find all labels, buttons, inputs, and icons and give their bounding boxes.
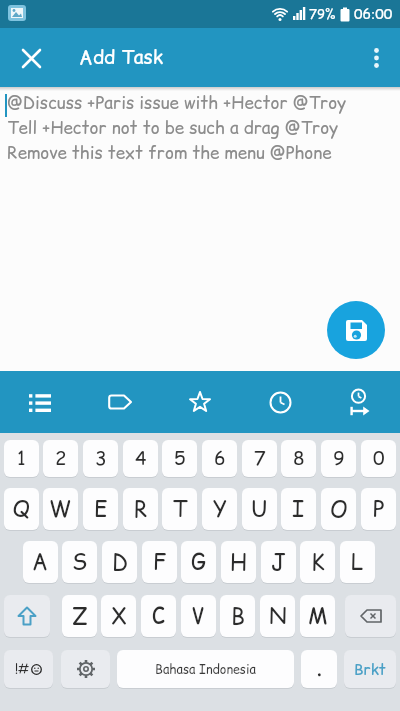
staticText: K [311, 547, 325, 578]
button[interactable]: Q [4, 488, 39, 530]
staticText: B [231, 601, 245, 632]
staticText: W [49, 494, 72, 525]
button[interactable]: J [261, 541, 296, 583]
staticText: U [251, 494, 268, 525]
button[interactable]: G [181, 541, 216, 583]
button[interactable] [14, 41, 48, 75]
staticText: Brkt [354, 659, 386, 680]
staticText: 5 [174, 445, 186, 472]
button[interactable] [4, 595, 50, 637]
staticText: 8 [293, 445, 305, 472]
button[interactable]: 7 [242, 440, 277, 477]
button[interactable]: 6 [202, 440, 237, 477]
button[interactable]: C [141, 595, 176, 637]
button[interactable]: B [220, 595, 255, 637]
button[interactable]: H [221, 541, 256, 583]
button[interactable] [80, 371, 160, 433]
staticText: 4 [135, 445, 147, 472]
button[interactable] [240, 371, 320, 433]
button[interactable]: U [242, 488, 277, 530]
button[interactable]: 5 [162, 440, 197, 477]
button[interactable]: !# [4, 650, 53, 688]
staticText: Bahasa Indonesia [155, 661, 256, 678]
staticText: S [72, 547, 88, 578]
button[interactable]: S [62, 541, 97, 583]
staticText: Add Task [79, 44, 164, 71]
staticText: G [191, 547, 206, 578]
button[interactable]: Z [62, 595, 97, 637]
staticText: P [373, 494, 385, 525]
button[interactable]: Bahasa Indonesia [117, 650, 294, 688]
staticText: 9 [333, 445, 345, 472]
staticText: 06:00 [354, 4, 393, 24]
staticText: E [94, 494, 108, 525]
button[interactable] [327, 301, 385, 359]
staticText: 0 [373, 445, 385, 472]
button[interactable]: E [83, 488, 118, 530]
staticText: R [134, 494, 148, 525]
button[interactable] [0, 371, 80, 433]
staticText: V [191, 601, 206, 632]
button[interactable]: X [101, 595, 136, 637]
button[interactable]: 4 [123, 440, 158, 477]
button[interactable]: 3 [83, 440, 118, 477]
staticText: J [271, 547, 286, 578]
staticText: I [292, 494, 305, 525]
button[interactable] [160, 371, 240, 433]
button[interactable]: K [300, 541, 335, 583]
button[interactable] [345, 595, 396, 637]
staticText: 6 [214, 445, 226, 472]
button[interactable]: R [123, 488, 158, 530]
button[interactable]: . [301, 650, 337, 688]
button[interactable]: O [321, 488, 356, 530]
staticText: D [112, 547, 128, 578]
staticText: H [230, 547, 247, 578]
staticText: 3 [95, 445, 107, 472]
button[interactable]: T [162, 488, 197, 530]
button[interactable]: A [23, 541, 58, 583]
staticText: O [330, 494, 348, 525]
staticText: 7 [254, 445, 266, 472]
staticText: Z [72, 601, 88, 632]
staticText: L [351, 547, 364, 578]
staticText: F [153, 547, 167, 578]
button[interactable]: Brkt [344, 650, 396, 688]
button[interactable]: L [340, 541, 375, 583]
staticText: Y [213, 494, 227, 525]
button[interactable] [320, 371, 400, 433]
staticText: Q [12, 494, 32, 525]
button[interactable]: F [142, 541, 177, 583]
staticText: C [152, 601, 166, 632]
staticText: @Discuss +Paris issue with +Hector @Troy… [7, 91, 347, 165]
button[interactable]: 0 [361, 440, 396, 477]
button[interactable] [61, 650, 110, 688]
button[interactable]: W [43, 488, 78, 530]
button[interactable]: P [361, 488, 396, 530]
staticText: 2 [55, 445, 67, 472]
staticText: !# [15, 660, 30, 678]
staticText: T [172, 494, 187, 525]
button[interactable]: D [102, 541, 137, 583]
button[interactable]: 8 [281, 440, 316, 477]
staticText: A [32, 547, 49, 578]
button[interactable]: M [300, 595, 335, 637]
button[interactable]: I [281, 488, 316, 530]
button[interactable]: 1 [4, 440, 39, 477]
button[interactable]: 9 [321, 440, 356, 477]
button[interactable] [352, 34, 400, 82]
staticText: 79% [309, 5, 336, 23]
button[interactable]: Y [202, 488, 237, 530]
staticText: 1 [17, 445, 26, 472]
staticText: M [308, 601, 328, 632]
button[interactable]: N [260, 595, 295, 637]
staticText: X [111, 601, 127, 632]
staticText: N [269, 601, 287, 632]
button[interactable]: V [181, 595, 216, 637]
staticText: . [317, 657, 322, 682]
button[interactable]: 2 [43, 440, 78, 477]
